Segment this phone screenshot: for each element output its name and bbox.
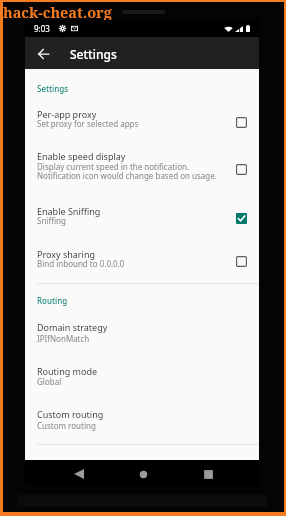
button[interactable]: Home xyxy=(131,462,155,486)
staticText: Bind inbound to 0.0.0.0 xyxy=(37,258,125,269)
button[interactable]: Proxy sharing xyxy=(230,250,252,272)
staticText: Settings xyxy=(37,83,69,94)
staticText: Custom routing xyxy=(37,408,104,420)
staticText: Routing mode xyxy=(37,365,98,377)
staticText: Settings xyxy=(70,46,117,62)
button[interactable]: Domain strategy xyxy=(25,309,259,348)
button[interactable]: Recent apps xyxy=(196,462,220,486)
staticText: IPIfNonMatch xyxy=(37,333,90,344)
staticText: hack-cheat.org xyxy=(3,2,112,22)
button[interactable]: Enable Sniffing xyxy=(230,207,252,229)
staticText: Custom routing xyxy=(37,420,96,431)
staticText: 9:03 xyxy=(34,23,50,34)
button[interactable]: Routing mode xyxy=(25,351,259,391)
button[interactable]: Custom routing xyxy=(25,394,259,435)
button[interactable]: Enable Sniffing xyxy=(25,192,259,231)
button[interactable]: Enable speed display xyxy=(230,158,252,180)
button[interactable]: Enable speed display xyxy=(25,139,259,187)
staticText: Domain strategy xyxy=(37,321,108,333)
staticText: Sniffing xyxy=(37,215,66,226)
button[interactable]: Per-app proxy xyxy=(25,95,259,134)
staticText: Set proxy for selected apps xyxy=(37,118,139,129)
staticText: Per-app proxy xyxy=(37,108,97,120)
button[interactable]: Proxy sharing xyxy=(25,235,259,274)
button[interactable]: Per-app proxy xyxy=(230,111,252,133)
staticText: Display current speed in the notificatio… xyxy=(37,161,190,172)
staticText: Proxy sharing xyxy=(37,248,95,260)
staticText: Notification icon would change based on … xyxy=(37,170,217,181)
staticText: Global xyxy=(37,376,62,387)
staticText: Routing xyxy=(37,295,68,306)
staticText: Enable speed display xyxy=(37,150,126,162)
staticText: Enable Sniffing xyxy=(37,205,101,217)
button[interactable]: Back xyxy=(67,462,91,486)
button[interactable]: Navigate up xyxy=(31,42,55,66)
